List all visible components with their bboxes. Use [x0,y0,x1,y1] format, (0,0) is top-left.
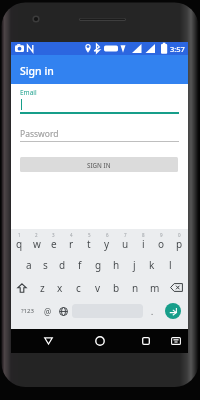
button[interactable]: m [145,276,164,299]
button[interactable]: Hide keyboard [164,329,188,353]
staticText: @ [44,306,52,317]
staticText: 3:57 [170,44,185,54]
button[interactable]: c [69,276,88,299]
button[interactable]: 1 [11,231,28,253]
button[interactable]: d [54,253,71,276]
staticText: p [176,237,183,251]
staticText: f [78,258,82,272]
button[interactable]: 5 [80,231,98,253]
staticText: o [158,237,165,251]
button[interactable]: Change language [54,299,72,323]
staticText: q [16,237,23,251]
staticText: Password [20,128,59,140]
staticText: j [133,258,136,272]
staticText: . [151,306,154,317]
staticText: w [33,237,41,251]
button[interactable]: 7 [116,231,134,253]
staticText: 6 [106,232,109,238]
button[interactable]: Home [86,329,114,353]
staticText: g [95,258,102,272]
button[interactable]: k [143,253,161,276]
staticText: 4 [70,232,73,238]
button[interactable]: z [33,276,51,299]
button[interactable]: Shift [11,276,33,299]
button[interactable]: h [107,253,125,276]
button[interactable]: SIGN IN [20,157,178,172]
staticText: 0 [178,232,181,238]
staticText: r [69,237,74,251]
staticText: 8 [142,232,145,238]
button[interactable]: b [107,276,126,299]
button[interactable]: 6 [98,231,116,253]
button[interactable]: 0 [170,231,188,253]
button[interactable]: 2 [28,231,45,253]
staticText: u [122,237,129,251]
staticText: 2 [35,232,38,238]
button[interactable]: . [145,299,159,323]
staticText: 9 [160,232,163,238]
staticText: n [132,281,139,295]
button[interactable]: Back [34,329,62,353]
staticText: x [57,281,63,295]
button[interactable]: j [125,253,143,276]
button[interactable]: v [88,276,107,299]
staticText: a [26,258,32,272]
staticText: t [87,237,91,251]
button[interactable]: s [37,253,54,276]
button[interactable]: g [89,253,107,276]
button[interactable]: Enter [162,299,184,323]
button[interactable]: l [161,253,179,276]
button[interactable]: Backspace [164,276,188,299]
staticText: e [51,237,57,251]
button[interactable]: 9 [152,231,170,253]
staticText: 1 [18,232,21,238]
staticText: m [150,281,160,295]
button[interactable]: x [51,276,69,299]
button[interactable]: @ [39,299,57,323]
staticText: 3 [52,232,55,238]
button[interactable]: Sign in [11,55,188,84]
staticText: v [95,281,101,295]
staticText: SIGN IN [87,161,111,169]
staticText: y [104,237,110,251]
staticText: s [43,258,48,272]
staticText: z [40,281,45,295]
staticText: d [59,258,66,272]
staticText: 7 [124,232,127,238]
button[interactable]: 4 [62,231,80,253]
staticText: k [149,258,155,272]
staticText: b [113,281,120,295]
button[interactable]: Recents [132,329,160,353]
staticText: l [169,258,172,272]
staticText: ?123 [21,307,34,315]
button[interactable]: 3 [45,231,62,253]
staticText: 5 [88,232,91,238]
button[interactable]: ?123 [14,299,40,323]
staticText: c [76,281,81,295]
button[interactable]: f [71,253,89,276]
staticText: i [142,237,145,251]
staticText: Email [20,88,37,97]
staticText: h [113,258,120,272]
staticText: Sign in [20,64,54,78]
button[interactable]: 8 [134,231,152,253]
button[interactable]: a [20,253,37,276]
button[interactable]: n [126,276,145,299]
